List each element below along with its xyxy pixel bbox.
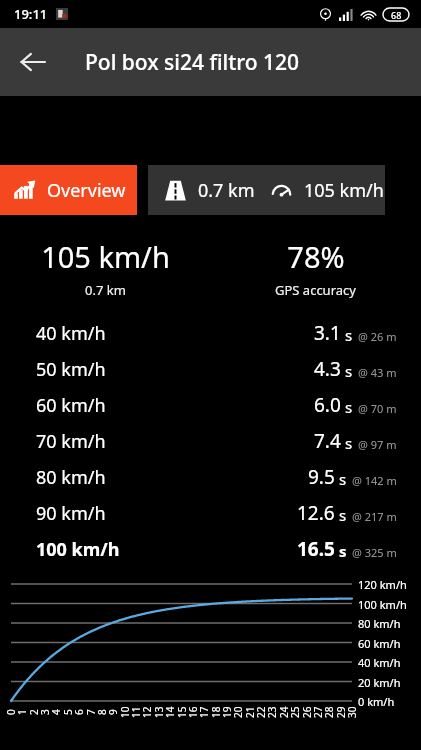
- button[interactable]: 90 km/h: [0, 495, 421, 531]
- staticText: s: [339, 469, 347, 489]
- staticText: 19:11: [14, 5, 48, 23]
- button[interactable]: Overview: [0, 165, 137, 215]
- staticText: 60 km/h: [358, 636, 401, 651]
- staticText: 50 km/h: [36, 357, 106, 382]
- staticText: 19: [220, 706, 234, 718]
- staticText: 6.0: [314, 392, 341, 418]
- staticText: 17: [197, 706, 211, 718]
- staticText: @ 97 m: [358, 437, 397, 452]
- staticText: Overview: [47, 178, 126, 203]
- staticText: 40 km/h: [358, 655, 401, 670]
- staticText: 27: [311, 706, 325, 718]
- staticText: 4.3: [314, 356, 341, 382]
- staticText: 24: [277, 706, 291, 718]
- staticText: 22: [254, 706, 268, 718]
- staticText: s: [345, 433, 353, 453]
- staticText: 25: [288, 706, 302, 718]
- staticText: 80 km/h: [358, 616, 401, 631]
- staticText: GPS accuracy: [275, 281, 356, 299]
- staticText: Pol box si24 filtro 120: [85, 48, 300, 77]
- staticText: 30: [345, 706, 359, 718]
- staticText: @ 217 m: [352, 509, 397, 524]
- staticText: 3: [38, 709, 52, 715]
- button[interactable]: 100 km/h: [0, 531, 421, 567]
- staticText: 12.6: [297, 500, 335, 526]
- staticText: 20 km/h: [358, 675, 401, 690]
- staticText: 29: [334, 706, 348, 718]
- staticText: 0.7 km: [198, 178, 255, 203]
- staticText: 105 km/h: [304, 178, 384, 203]
- staticText: 14: [163, 706, 177, 718]
- staticText: 0.7 km: [85, 281, 126, 299]
- staticText: 15: [175, 706, 189, 718]
- staticText: s: [345, 397, 353, 417]
- staticText: 9.5: [308, 464, 335, 490]
- staticText: 26: [300, 706, 314, 718]
- button[interactable]: 50 km/h: [0, 351, 421, 387]
- staticText: 11: [129, 706, 143, 718]
- staticText: 40 km/h: [36, 321, 106, 346]
- staticText: 7: [84, 709, 98, 715]
- staticText: 90 km/h: [36, 501, 106, 526]
- staticText: s: [345, 325, 353, 345]
- staticText: 23: [265, 706, 279, 718]
- staticText: 68: [391, 9, 402, 21]
- staticText: @ 26 m: [358, 329, 397, 344]
- staticText: 78%: [287, 237, 345, 276]
- staticText: 1: [15, 709, 29, 715]
- staticText: 60 km/h: [36, 393, 106, 418]
- staticText: @ 43 m: [358, 365, 397, 380]
- staticText: 105 km/h: [41, 237, 170, 276]
- staticText: s: [345, 361, 353, 381]
- staticText: 3.1: [314, 320, 341, 346]
- staticText: 13: [152, 706, 166, 718]
- staticText: 100 km/h: [36, 537, 120, 562]
- staticText: 16.5: [297, 536, 335, 562]
- staticText: 12: [140, 706, 154, 718]
- staticText: 80 km/h: [36, 465, 106, 490]
- staticText: 9: [106, 709, 120, 715]
- button[interactable]: 70 km/h: [0, 423, 421, 459]
- staticText: 21: [243, 706, 257, 718]
- staticText: 16: [186, 706, 200, 718]
- button[interactable]: 0.7 km: [148, 165, 385, 215]
- staticText: @ 325 m: [352, 545, 397, 560]
- button[interactable]: 60 km/h: [0, 387, 421, 423]
- staticText: 100 km/h: [358, 597, 407, 612]
- staticText: @ 142 m: [352, 473, 397, 488]
- staticText: 10: [118, 706, 132, 718]
- staticText: 8: [95, 709, 109, 715]
- staticText: 6: [72, 709, 86, 715]
- staticText: 20: [231, 706, 245, 718]
- button[interactable]: 40 km/h: [0, 315, 421, 351]
- staticText: s: [339, 541, 347, 561]
- staticText: 2: [27, 709, 41, 715]
- staticText: 0 km/h: [358, 694, 395, 709]
- button[interactable]: 80 km/h: [0, 459, 421, 495]
- staticText: 120 km/h: [358, 577, 407, 592]
- staticText: 7.4: [314, 428, 341, 454]
- staticText: 4: [49, 709, 63, 715]
- button[interactable]: Back: [11, 40, 55, 84]
- staticText: s: [339, 505, 347, 525]
- staticText: @ 70 m: [358, 401, 397, 416]
- staticText: 70 km/h: [36, 429, 106, 454]
- staticText: 18: [209, 706, 223, 718]
- staticText: 5: [61, 709, 75, 715]
- staticText: 28: [322, 706, 336, 718]
- staticText: 0: [4, 709, 18, 715]
